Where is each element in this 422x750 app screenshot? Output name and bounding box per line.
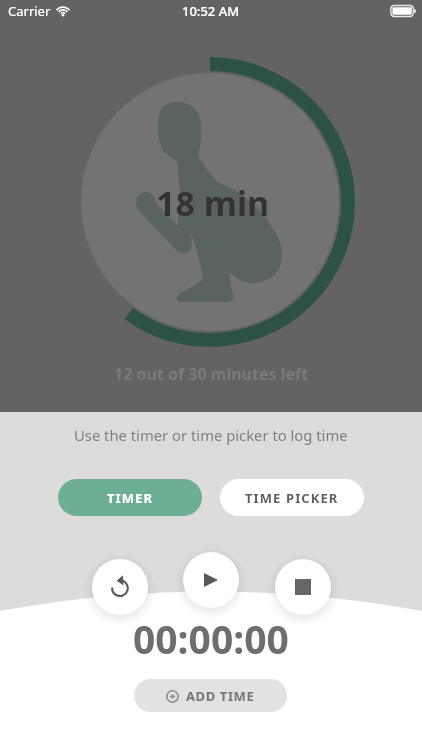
staticText: Use the timer or time picker to log time [74,425,348,445]
staticText: 10:52 AM [182,2,240,20]
staticText: 12 out of 30 minutes left [114,363,309,385]
button[interactable]: Stop [275,559,331,615]
other: Play [204,573,218,587]
button[interactable]: ADD TIME [134,679,287,712]
staticText: TIME PICKER [245,489,339,507]
other: Reset [109,576,131,598]
button[interactable]: TIME PICKER [220,479,364,516]
staticText: Carrier [8,2,51,20]
staticText: ADD TIME [186,687,255,705]
staticText: 18 min [156,180,270,226]
staticText: TIMER [107,489,154,507]
button[interactable]: TIMER [58,479,202,516]
button[interactable]: Reset [92,559,148,615]
button[interactable]: Play [183,552,239,608]
staticText: 00:00:00 [133,612,289,665]
